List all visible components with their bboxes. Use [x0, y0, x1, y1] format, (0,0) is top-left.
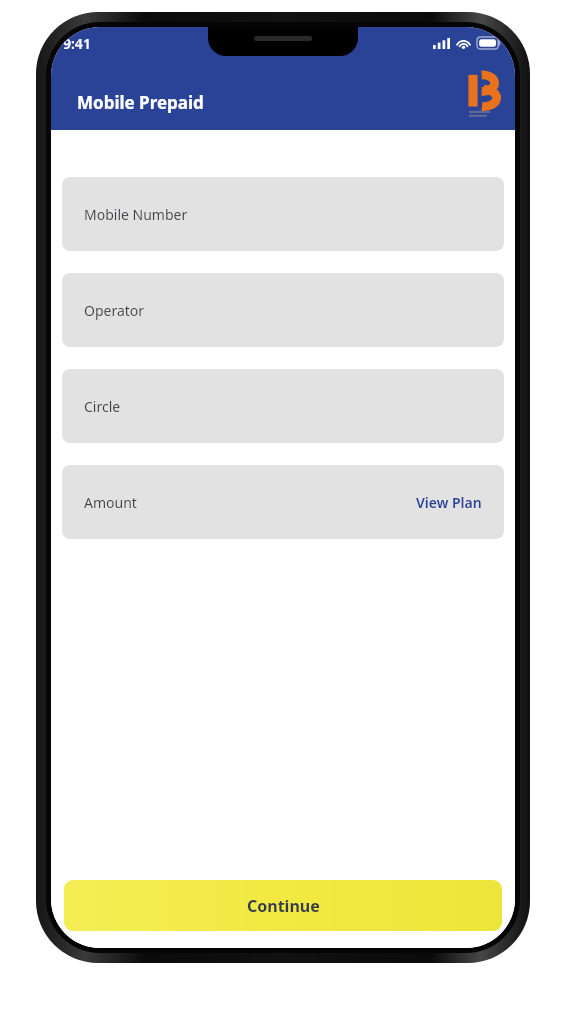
staticText: Amount [84, 493, 137, 512]
staticText: Continue [247, 895, 320, 917]
button[interactable]: Mobile Number [62, 177, 504, 251]
button[interactable]: View Plan [416, 493, 482, 512]
button[interactable]: Circle [62, 369, 504, 443]
staticText: Circle [84, 397, 121, 416]
button[interactable]: Continue [64, 880, 502, 931]
button[interactable]: Brand logo [465, 72, 499, 120]
staticText: Mobile Prepaid [77, 91, 204, 114]
button[interactable]: Amount [62, 465, 504, 539]
staticText: View Plan [416, 493, 482, 512]
staticText: Mobile Number [84, 205, 188, 224]
button[interactable]: Operator [62, 273, 504, 347]
staticText: Operator [84, 301, 145, 320]
staticText: 9:41 [63, 34, 91, 53]
